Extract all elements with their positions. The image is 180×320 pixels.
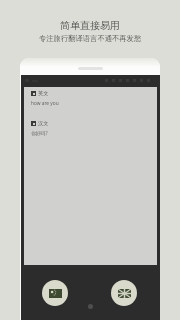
button[interactable]: 汉文 <box>31 120 49 127</box>
button[interactable]: 英文 <box>31 90 49 97</box>
button[interactable]: Home <box>88 304 93 309</box>
button[interactable]: English <box>111 280 137 306</box>
staticText: 英文 <box>38 90 49 97</box>
button[interactable]: Chinese <box>42 280 68 306</box>
staticText: how are you <box>31 100 59 107</box>
staticText: 汉文 <box>38 120 49 127</box>
staticText: 你好吗? <box>31 130 48 137</box>
staticText: 简单直接易用 <box>60 19 120 32</box>
staticText: 专注旅行翻译语言不通不再发愁 <box>39 34 142 43</box>
